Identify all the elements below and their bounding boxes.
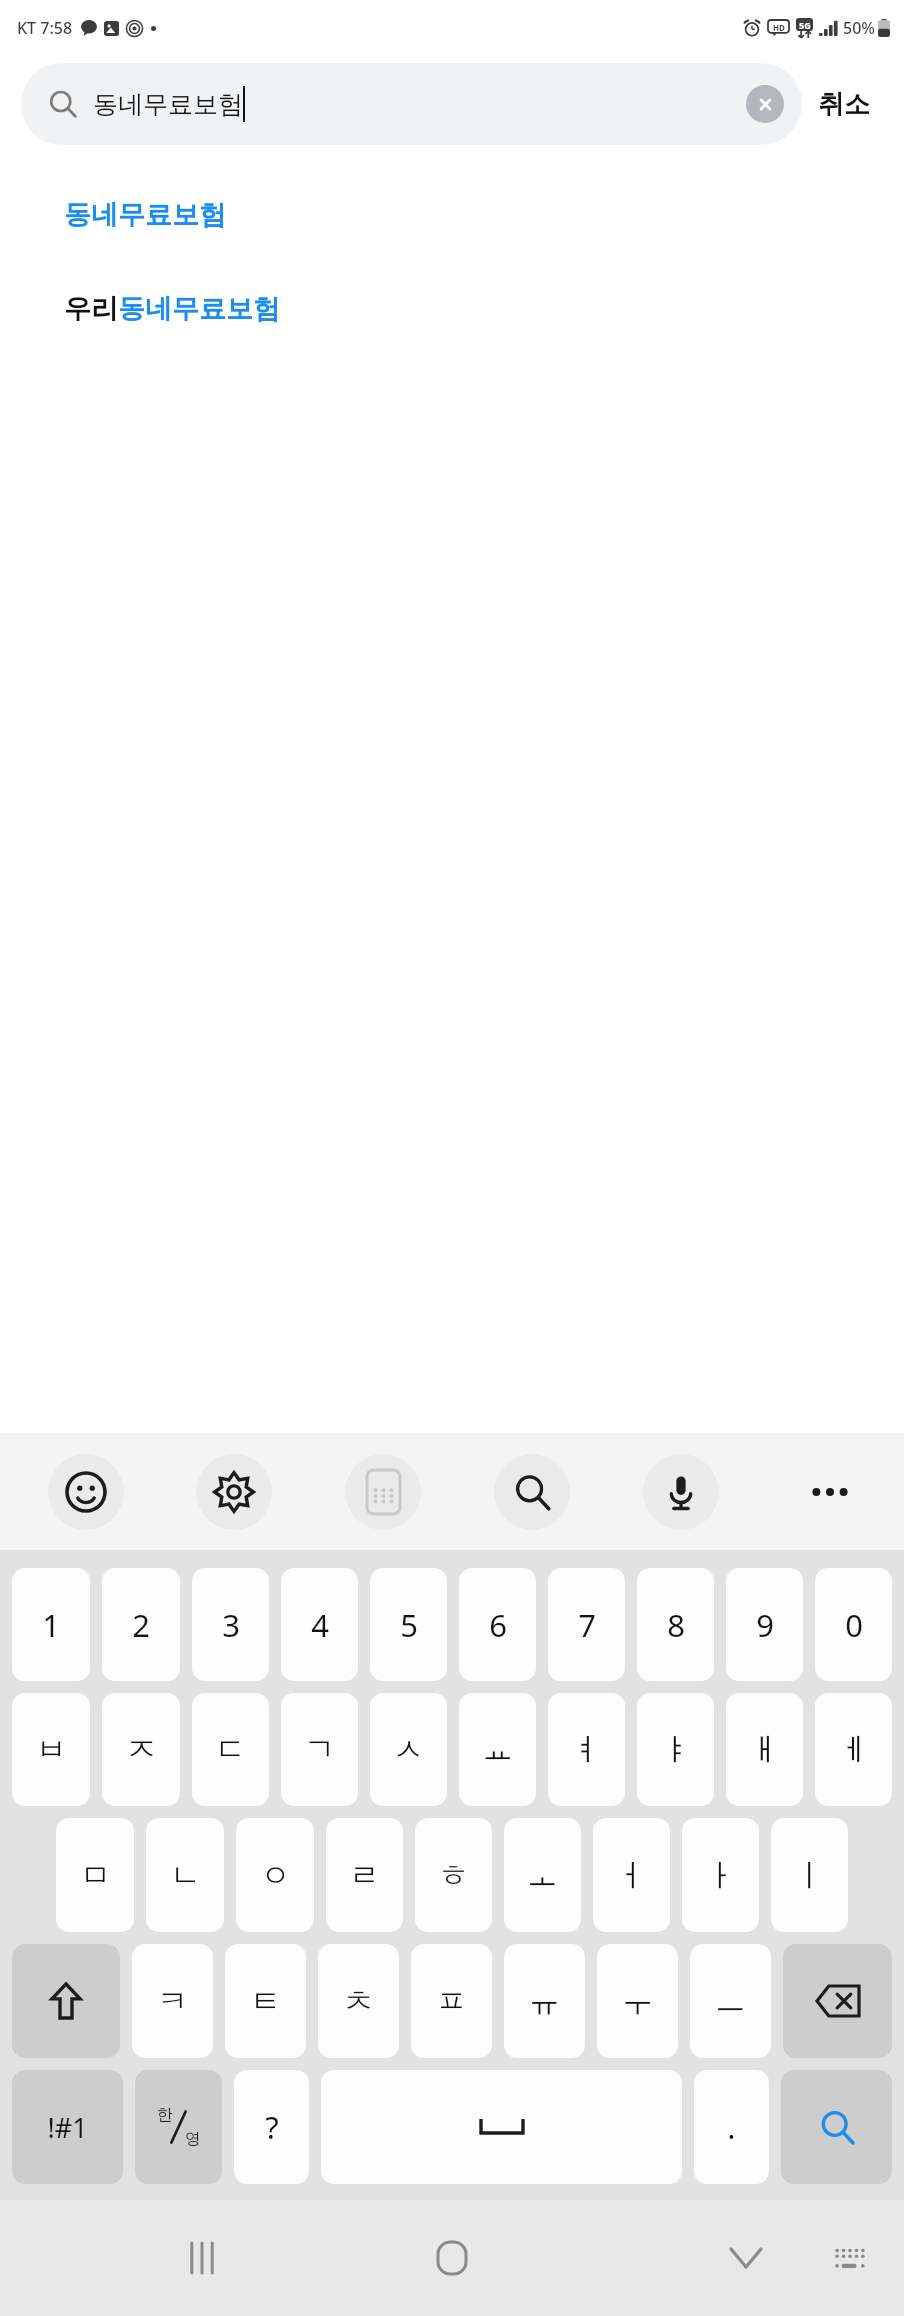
staticText: ㅊ <box>343 1982 374 2021</box>
staticText: ? <box>265 2106 279 2148</box>
button[interactable]: 1 <box>12 1568 90 1681</box>
button[interactable]: ㄷ <box>192 1693 269 1806</box>
button[interactable]: Space <box>321 2070 682 2184</box>
button[interactable]: Backspace <box>783 1944 892 2058</box>
staticText: ㅠ <box>529 1982 560 2021</box>
staticText: ㅂ <box>36 1730 67 1769</box>
button[interactable]: ㅌ <box>225 1944 306 2058</box>
button[interactable]: ㅕ <box>548 1693 625 1806</box>
button[interactable]: Home <box>416 2222 488 2294</box>
staticText: ㄷ <box>215 1730 246 1769</box>
button[interactable]: 5 <box>370 1568 447 1681</box>
button[interactable]: ㅗ <box>504 1818 581 1932</box>
button[interactable]: ㅏ <box>682 1818 759 1932</box>
button[interactable]: ㅊ <box>318 1944 399 2058</box>
button[interactable]: Change keyboard <box>814 2222 886 2294</box>
staticText: 5 <box>400 1604 418 1646</box>
button[interactable]: ㅇ <box>236 1818 314 1932</box>
button[interactable]: ㅈ <box>102 1693 180 1806</box>
staticText: ㅜ <box>622 1982 653 2021</box>
button[interactable]: 0 <box>815 1568 892 1681</box>
button[interactable]: Hide keyboard <box>710 2222 782 2294</box>
staticText: ㅔ <box>838 1730 869 1769</box>
button[interactable]: 7 <box>548 1568 625 1681</box>
button[interactable]: Voice input <box>606 1433 755 1550</box>
button[interactable]: ㄱ <box>281 1693 358 1806</box>
staticText: ㅈ <box>126 1730 157 1769</box>
button[interactable]: ㅐ <box>726 1693 803 1806</box>
staticText: ㅣ <box>794 1856 825 1895</box>
button[interactable]: ㅑ <box>637 1693 714 1806</box>
button[interactable]: ㅋ <box>132 1944 213 2058</box>
button[interactable]: ? <box>234 2070 309 2184</box>
button[interactable]: ㅍ <box>411 1944 492 2058</box>
button[interactable]: !#1 <box>12 2070 123 2184</box>
button[interactable]: ㄴ <box>146 1818 224 1932</box>
staticText: ㅌ <box>250 1982 281 2021</box>
button[interactable]: ㅅ <box>370 1693 447 1806</box>
button[interactable]: Shift <box>12 1944 120 2058</box>
staticText: 5G <box>799 19 811 31</box>
button[interactable]: ㅛ <box>459 1693 536 1806</box>
button[interactable]: Emoji <box>12 1433 160 1550</box>
button[interactable]: ㅣ <box>771 1818 848 1932</box>
button[interactable]: Number pad <box>308 1433 457 1550</box>
button[interactable]: 6 <box>459 1568 536 1681</box>
button[interactable]: Korean English toggle <box>135 2070 222 2184</box>
button[interactable]: Clear text <box>746 85 784 123</box>
staticText: 7 <box>578 1604 596 1646</box>
staticText: ㅑ <box>660 1730 691 1769</box>
button[interactable]: 취소 <box>802 76 886 133</box>
staticText: 0 <box>845 1604 863 1646</box>
staticText: 한 <box>157 2105 173 2125</box>
staticText: ㅗ <box>527 1856 558 1895</box>
button[interactable]: Recent apps <box>166 2222 238 2294</box>
staticText: ㅓ <box>616 1856 647 1895</box>
staticText: ㅐ <box>749 1730 780 1769</box>
staticText: ㅁ <box>80 1856 111 1895</box>
staticText: ㄱ <box>304 1730 335 1769</box>
staticText: ㅇ <box>260 1856 291 1895</box>
staticText: 동네무료보험 <box>93 89 243 120</box>
staticText: 동네무료보험 <box>64 198 226 232</box>
button[interactable]: Keyboard settings <box>160 1433 308 1550</box>
staticText: 9 <box>756 1604 774 1646</box>
staticText: HD <box>773 22 785 33</box>
staticText: ㅅ <box>393 1730 424 1769</box>
staticText: 4 <box>311 1604 329 1646</box>
button[interactable]: 4 <box>281 1568 358 1681</box>
staticText: ㅛ <box>482 1730 513 1769</box>
button[interactable]: ㅎ <box>415 1818 492 1932</box>
button[interactable]: ㅠ <box>504 1944 585 2058</box>
button[interactable]: 8 <box>637 1568 714 1681</box>
staticText: ㅎ <box>438 1856 469 1895</box>
button[interactable]: Search <box>457 1433 606 1550</box>
button[interactable]: . <box>694 2070 769 2184</box>
button[interactable]: ㅁ <box>56 1818 134 1932</box>
button[interactable]: 동네무료보험 <box>0 192 904 238</box>
staticText: ㄴ <box>170 1856 201 1895</box>
staticText: 8 <box>667 1604 685 1646</box>
button[interactable]: 9 <box>726 1568 803 1681</box>
button[interactable]: Search <box>781 2070 892 2184</box>
staticText: ㅏ <box>705 1856 736 1895</box>
button[interactable]: 동네무료보험 <box>21 63 802 145</box>
button[interactable]: More options <box>755 1433 904 1550</box>
button[interactable]: 3 <box>192 1568 269 1681</box>
staticText: 우리동네무료보험 <box>64 292 280 326</box>
staticText: . <box>727 2106 736 2148</box>
button[interactable]: ㅜ <box>597 1944 678 2058</box>
button[interactable]: 우리동네무료보험 <box>0 286 904 332</box>
button[interactable]: 2 <box>102 1568 180 1681</box>
button[interactable]: ㅂ <box>12 1693 90 1806</box>
staticText: 취소 <box>818 88 870 121</box>
staticText: KT 7:58 <box>17 17 73 39</box>
staticText: 영 <box>185 2129 201 2149</box>
staticText: 1 <box>42 1604 60 1646</box>
button[interactable]: ㅔ <box>815 1693 892 1806</box>
button[interactable]: ㅡ <box>690 1944 771 2058</box>
button[interactable]: ㅓ <box>593 1818 670 1932</box>
staticText: 2 <box>132 1604 150 1646</box>
staticText: ㅋ <box>157 1982 188 2021</box>
button[interactable]: ㄹ <box>326 1818 403 1932</box>
